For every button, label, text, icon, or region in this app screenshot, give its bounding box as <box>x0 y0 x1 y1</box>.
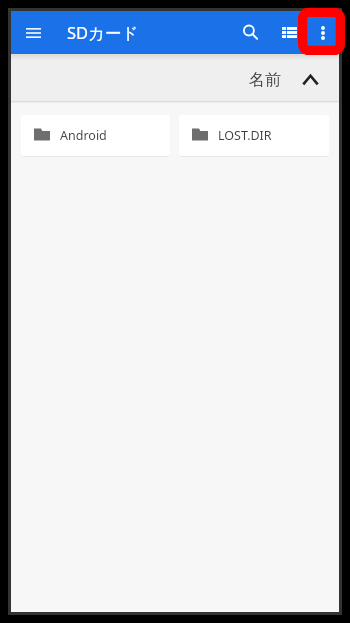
button[interactable]: Android <box>21 115 170 156</box>
button[interactable]: Switch view <box>267 16 306 49</box>
button[interactable]: Navigation menu <box>17 17 49 49</box>
staticText: LOST.DIR <box>218 127 272 144</box>
button[interactable]: 名前 <box>11 60 339 99</box>
button[interactable]: LOST.DIR <box>179 115 329 156</box>
button[interactable]: More options <box>306 16 339 49</box>
staticText: SDカード <box>67 21 139 44</box>
button[interactable]: Search <box>234 16 267 49</box>
staticText: 名前 <box>249 70 281 90</box>
staticText: Android <box>60 127 107 144</box>
